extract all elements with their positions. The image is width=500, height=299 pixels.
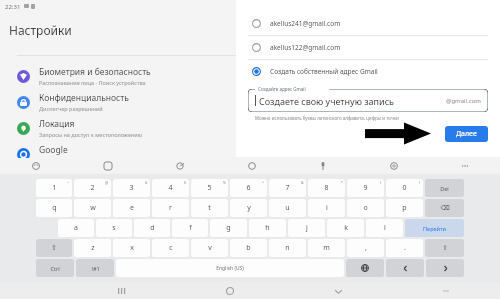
staticText: & <box>301 180 304 185</box>
button[interactable]: v <box>191 239 228 257</box>
staticText: ) <box>419 180 421 185</box>
button[interactable]: Локация <box>0 115 500 141</box>
button[interactable]: a <box>58 219 94 237</box>
button[interactable]: e <box>113 199 150 217</box>
button[interactable]: 4 <box>152 179 189 197</box>
staticText: 5 <box>207 183 212 193</box>
button[interactable]: Ещё <box>429 158 500 174</box>
button[interactable]: . <box>386 239 423 257</box>
button[interactable]: Влево <box>386 259 424 277</box>
staticText: 3 <box>129 183 134 193</box>
button[interactable]: 3 <box>113 179 150 197</box>
button[interactable]: i <box>308 199 345 217</box>
button[interactable]: 5 <box>191 179 228 197</box>
staticText: ^ <box>262 180 265 185</box>
staticText: Локация <box>39 118 75 130</box>
staticText: a <box>74 223 78 233</box>
button[interactable]: Биометрия и безопасность <box>0 63 500 89</box>
staticText: z <box>91 243 95 253</box>
button[interactable]: , <box>347 239 384 257</box>
staticText: Распознавание лица · Поиск устройства <box>39 79 146 86</box>
button[interactable]: Перейти <box>405 219 464 237</box>
button[interactable]: Далее <box>445 126 488 142</box>
button[interactable]: Del <box>425 179 464 197</box>
button[interactable]: Сменить язык <box>346 259 384 277</box>
staticText: $ <box>184 180 187 185</box>
button[interactable]: l <box>366 219 403 237</box>
staticText: , <box>365 243 367 253</box>
staticText: * <box>341 180 343 185</box>
button[interactable]: p <box>386 199 423 217</box>
staticText: c <box>169 243 173 253</box>
button[interactable]: f <box>172 219 208 237</box>
button[interactable]: Создаете свою учетную запись <box>248 89 488 112</box>
staticText: Создайте адрес Gmail <box>258 86 306 92</box>
button[interactable]: !#1 <box>76 259 114 277</box>
staticText: ~ <box>67 180 70 185</box>
button[interactable]: Создать собственный адрес Gmail <box>236 60 500 83</box>
button[interactable]: Перевод <box>216 158 287 174</box>
staticText: j <box>306 223 308 233</box>
staticText: Далее <box>456 129 477 139</box>
button[interactable]: GIF <box>144 158 216 174</box>
button[interactable]: h <box>249 219 286 237</box>
button[interactable]: j <box>288 219 325 237</box>
staticText: g <box>226 223 231 233</box>
button[interactable]: Скрыть клавиатуру <box>327 284 349 298</box>
button[interactable]: ⇧ <box>36 239 72 257</box>
button[interactable]: akellus122@gmail.com <box>236 36 500 59</box>
button[interactable]: m <box>308 239 345 257</box>
button[interactable]: Эмодзи <box>0 158 72 174</box>
button[interactable]: x <box>113 239 150 257</box>
button[interactable]: g <box>210 219 247 237</box>
button[interactable]: Поиск <box>462 20 482 40</box>
staticText: @ <box>105 180 109 185</box>
button[interactable]: q <box>36 199 72 217</box>
button[interactable]: 1 <box>36 179 72 197</box>
staticText: 2 <box>90 183 95 193</box>
staticText: q <box>52 203 57 213</box>
staticText: f <box>189 223 192 233</box>
button[interactable]: o <box>347 199 384 217</box>
staticText: Создать собственный адрес Gmail <box>270 67 378 76</box>
button[interactable]: Стикеры <box>72 158 144 174</box>
button[interactable]: d <box>134 219 170 237</box>
staticText: w <box>90 203 96 213</box>
button[interactable]: 8 <box>308 179 345 197</box>
staticText: Конфиденциальность <box>39 92 129 104</box>
button[interactable]: 9 <box>347 179 384 197</box>
button[interactable]: Вправо <box>426 259 464 277</box>
button[interactable]: r <box>152 199 189 217</box>
button[interactable]: s <box>96 219 132 237</box>
button[interactable]: akellus241@gmail.com <box>236 12 500 35</box>
button[interactable]: English (US) <box>116 259 344 277</box>
staticText: 22:31 <box>5 3 21 11</box>
button[interactable]: Ctrl <box>36 259 74 277</box>
staticText: % <box>223 180 226 185</box>
button[interactable]: Домой <box>219 284 241 298</box>
button[interactable]: b <box>230 239 267 257</box>
button[interactable]: Недавние <box>111 284 133 298</box>
button[interactable]: Настройки <box>358 158 429 174</box>
button[interactable]: y <box>230 199 267 217</box>
button[interactable]: ⌫ <box>425 199 464 217</box>
staticText: ⇧ <box>51 244 57 252</box>
button[interactable]: Google <box>0 141 500 167</box>
button[interactable]: w <box>74 199 111 217</box>
button[interactable]: Конфиденциальность <box>0 89 500 115</box>
button[interactable]: 6 <box>230 179 267 197</box>
button[interactable]: t <box>191 199 228 217</box>
button[interactable]: ⇧ <box>425 239 464 257</box>
button[interactable]: 0 <box>386 179 423 197</box>
button[interactable]: z <box>74 239 111 257</box>
button[interactable]: n <box>269 239 306 257</box>
button[interactable]: Назад <box>435 284 457 298</box>
button[interactable]: k <box>327 219 364 237</box>
button[interactable]: Голосовой ввод <box>287 158 358 174</box>
staticText: b <box>246 243 251 253</box>
button[interactable]: u <box>269 199 306 217</box>
staticText: Настройки <box>9 22 72 38</box>
button[interactable]: 2 <box>74 179 111 197</box>
button[interactable]: 7 <box>269 179 306 197</box>
button[interactable]: c <box>152 239 189 257</box>
